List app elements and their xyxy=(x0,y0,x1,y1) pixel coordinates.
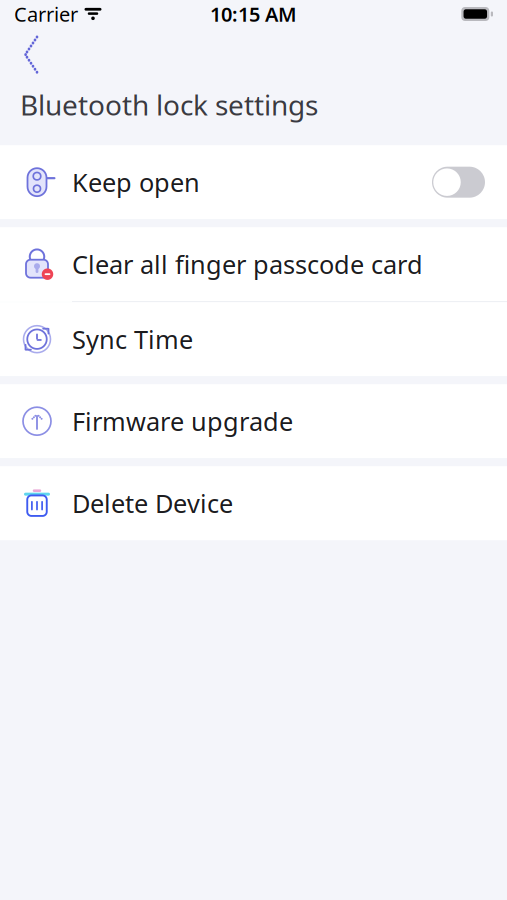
button[interactable]: Sync Time xyxy=(0,302,507,376)
button[interactable]: Back xyxy=(6,28,54,74)
staticText: Sync Time xyxy=(72,322,193,356)
button[interactable]: Clear all finger passcode card xyxy=(0,227,507,301)
staticText: Delete Device xyxy=(72,486,233,520)
staticText: Clear all finger passcode card xyxy=(72,247,423,281)
staticText: Firmware upgrade xyxy=(72,404,293,438)
button[interactable]: Delete Device xyxy=(0,466,507,540)
staticText: 10:15 AM xyxy=(210,1,297,27)
staticText: Carrier xyxy=(14,1,78,27)
staticText: Keep open xyxy=(72,165,200,199)
staticText: Bluetooth lock settings xyxy=(20,86,318,123)
button[interactable]: Keep open xyxy=(0,145,507,219)
button[interactable]: Firmware upgrade xyxy=(0,384,507,458)
